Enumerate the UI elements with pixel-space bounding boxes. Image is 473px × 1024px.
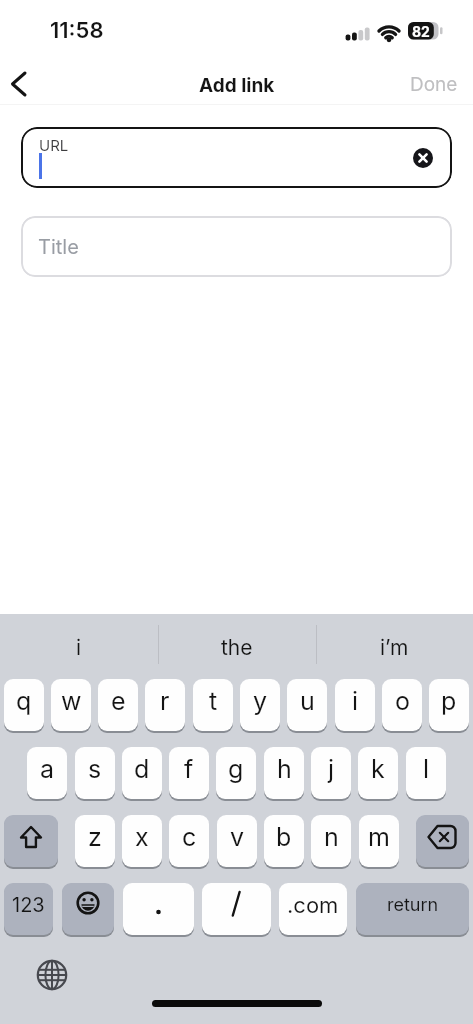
button[interactable]: Title [21,216,452,277]
staticText: 11:58 [50,17,104,44]
staticText: return [387,894,439,916]
staticText: k [371,754,385,784]
button[interactable] [4,815,58,867]
staticText: 82 [412,23,430,40]
button[interactable]: p [429,679,469,731]
button[interactable]: e [98,679,138,731]
button[interactable]: l [406,747,446,799]
staticText: t [209,686,218,716]
button[interactable]: i [0,631,158,664]
staticText: n [324,822,339,852]
staticText: j [328,754,335,784]
staticText: Add link [199,74,275,97]
button[interactable]: r [145,679,185,731]
button[interactable]: d [122,747,162,799]
button[interactable]: u [287,679,327,731]
button[interactable]: return [356,883,469,935]
staticText: d [134,754,150,784]
button[interactable]: q [4,679,44,731]
button[interactable]: Done [403,68,465,100]
button[interactable]: i [335,679,375,731]
staticText: u [300,686,315,716]
button[interactable]: w [51,679,91,731]
button[interactable]: the [158,631,316,664]
button[interactable] [202,883,271,935]
staticText: .com [287,892,339,919]
staticText: x [135,822,149,852]
button[interactable]: o [382,679,422,731]
staticText: w [61,686,82,716]
staticText: l [423,754,430,784]
staticText: i [352,686,359,716]
button[interactable]: j [311,747,351,799]
staticText: h [277,754,292,784]
button[interactable] [123,883,194,935]
staticText: c [182,822,197,852]
button[interactable]: z [75,815,115,867]
button[interactable]: b [264,815,304,867]
staticText: the [221,635,253,660]
staticText: z [88,822,102,852]
staticText: 123 [12,893,45,917]
staticText: a [40,754,55,784]
button[interactable]: k [358,747,398,799]
button[interactable]: t [193,679,233,731]
button[interactable] [2,66,40,102]
staticText: y [253,686,268,716]
button[interactable]: s [75,747,115,799]
button[interactable]: g [216,747,256,799]
button[interactable]: y [240,679,280,731]
staticText: b [276,822,292,852]
staticText: s [88,754,102,784]
button[interactable] [31,954,73,996]
button[interactable] [62,883,114,935]
staticText: p [441,686,457,716]
button[interactable]: n [311,815,351,867]
button[interactable]: 123 [4,883,53,935]
staticText: Title [38,235,79,259]
staticText: URL [39,136,69,154]
button[interactable]: f [169,747,209,799]
button[interactable] [413,148,433,168]
staticText: i [76,635,82,660]
button[interactable]: m [359,815,399,867]
button[interactable] [416,815,469,867]
staticText: e [111,686,126,716]
button[interactable]: i’m [316,631,473,664]
button[interactable]: a [27,747,67,799]
button[interactable]: x [122,815,162,867]
staticText: q [16,686,32,716]
staticText: r [160,686,170,716]
staticText: f [184,754,194,784]
staticText: v [230,822,245,852]
staticText: i’m [380,635,409,660]
staticText: Done [410,73,458,96]
staticText: m [368,822,390,852]
button[interactable]: .com [279,883,347,935]
staticText: o [395,686,410,716]
button[interactable]: v [217,815,257,867]
staticText: g [228,754,244,784]
button[interactable]: c [169,815,209,867]
button[interactable]: h [264,747,304,799]
button[interactable]: URL [21,127,452,188]
